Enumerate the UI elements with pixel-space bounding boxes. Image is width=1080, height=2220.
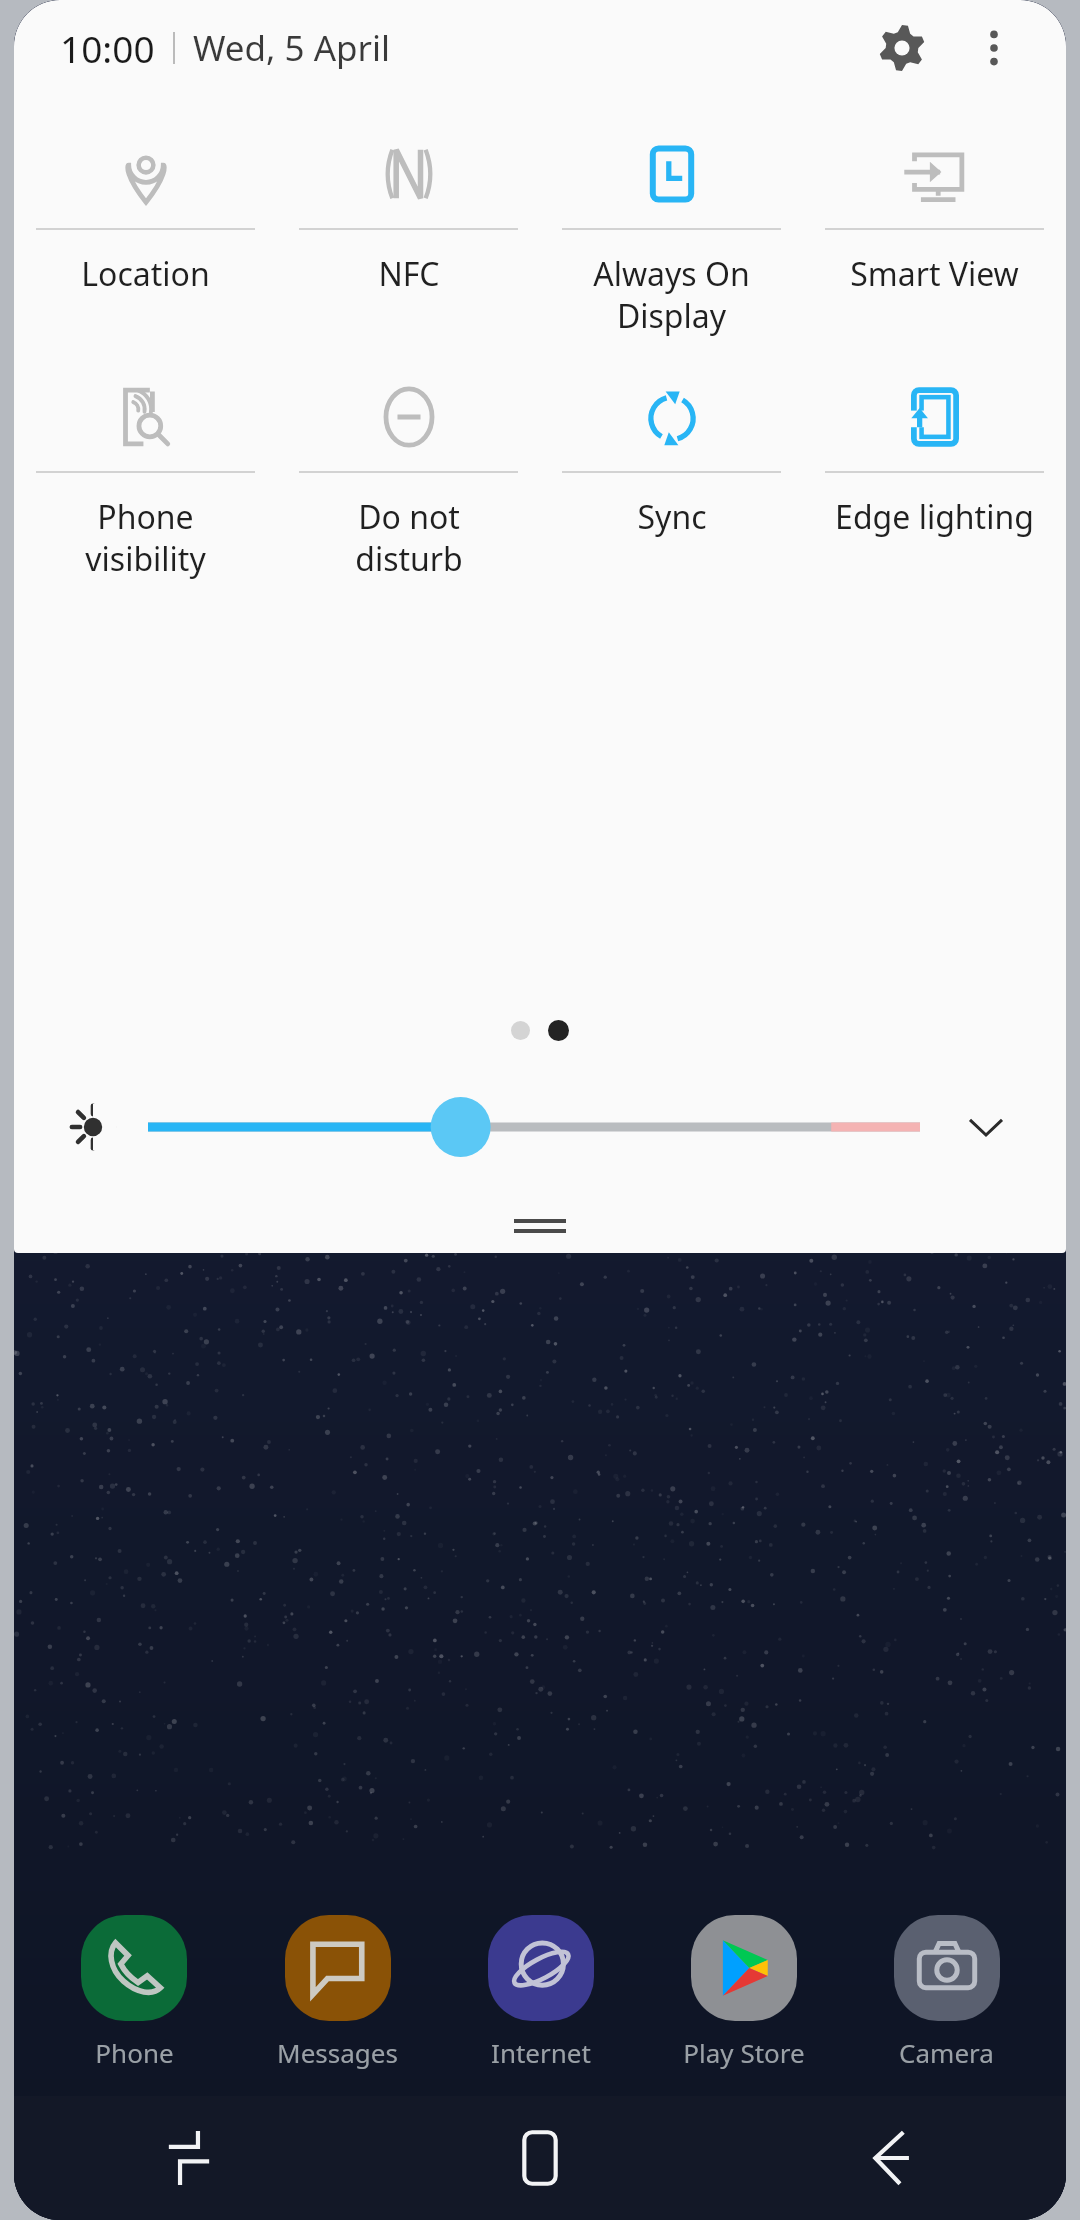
button[interactable]: Phone visibility	[14, 363, 277, 580]
staticText: Sync	[637, 495, 707, 539]
button[interactable]: Back	[715, 2096, 1066, 2220]
button[interactable]: Smart View	[803, 120, 1066, 296]
button[interactable]: Messages	[236, 1915, 439, 2070]
staticText: Phone	[95, 2035, 174, 2070]
button[interactable]: Google search	[38, 1022, 1042, 1098]
button[interactable]: Recents	[14, 2096, 364, 2220]
button[interactable]: Phone	[32, 1915, 236, 2070]
button[interactable]: Camera	[845, 1915, 1048, 2070]
button[interactable]: More options	[962, 16, 1026, 80]
button[interactable]: Settings	[864, 10, 940, 86]
staticText: Edge lighting	[835, 495, 1034, 539]
staticText: Always On Display	[593, 252, 750, 337]
button[interactable]: Location	[14, 120, 277, 296]
staticText: Smart View	[850, 252, 1019, 296]
staticText: Camera	[899, 2035, 994, 2070]
staticText: Phone visibility	[85, 495, 206, 580]
button[interactable]: Play Store	[642, 1915, 845, 2070]
button[interactable]: Home	[364, 2096, 715, 2220]
button[interactable]: NFC	[277, 120, 540, 296]
button[interactable]: Edge lighting	[803, 363, 1066, 539]
staticText: Location	[81, 252, 210, 296]
button[interactable]: Sync	[540, 363, 803, 539]
button[interactable]: Do not disturb	[277, 363, 540, 580]
staticText: Do not disturb	[355, 495, 463, 580]
staticText: 10:00	[60, 23, 155, 73]
button[interactable]: Always On Display	[540, 120, 803, 337]
staticText: Play Store	[683, 2035, 805, 2070]
button[interactable]: Internet	[439, 1915, 642, 2070]
staticText: Internet	[491, 2035, 591, 2070]
button[interactable]: Expand brightness options	[954, 1095, 1018, 1159]
staticText: Messages	[277, 2035, 398, 2070]
staticText: NFC	[378, 252, 440, 296]
staticText: Wed, 5 April	[193, 24, 391, 72]
